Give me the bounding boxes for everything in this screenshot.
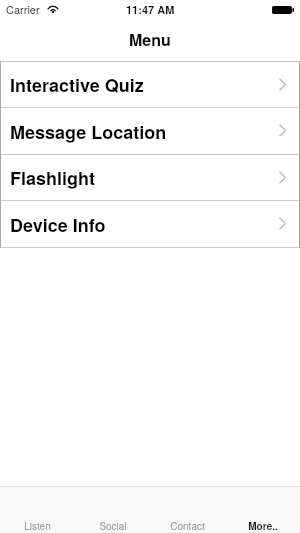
- button[interactable]: Listen: [0, 487, 75, 533]
- staticText: Message Location: [10, 119, 167, 145]
- button[interactable]: Flashlight: [0, 155, 300, 201]
- button[interactable]: Interactive Quiz: [0, 62, 300, 108]
- button[interactable]: More..: [225, 487, 300, 533]
- staticText: Listen: [24, 519, 51, 533]
- staticText: Device Info: [10, 212, 106, 238]
- staticText: Interactive Quiz: [10, 72, 144, 98]
- button[interactable]: Social: [75, 487, 150, 533]
- button[interactable]: Message Location: [0, 108, 300, 155]
- staticText: Menu: [129, 28, 171, 51]
- button[interactable]: Contact: [150, 487, 225, 533]
- button[interactable]: Device Info: [0, 201, 300, 248]
- staticText: Social: [99, 519, 127, 533]
- staticText: Flashlight: [10, 165, 96, 191]
- staticText: More..: [248, 519, 278, 533]
- staticText: Carrier: [6, 1, 40, 17]
- staticText: Contact: [170, 519, 205, 533]
- staticText: 11:47 AM: [126, 2, 175, 18]
